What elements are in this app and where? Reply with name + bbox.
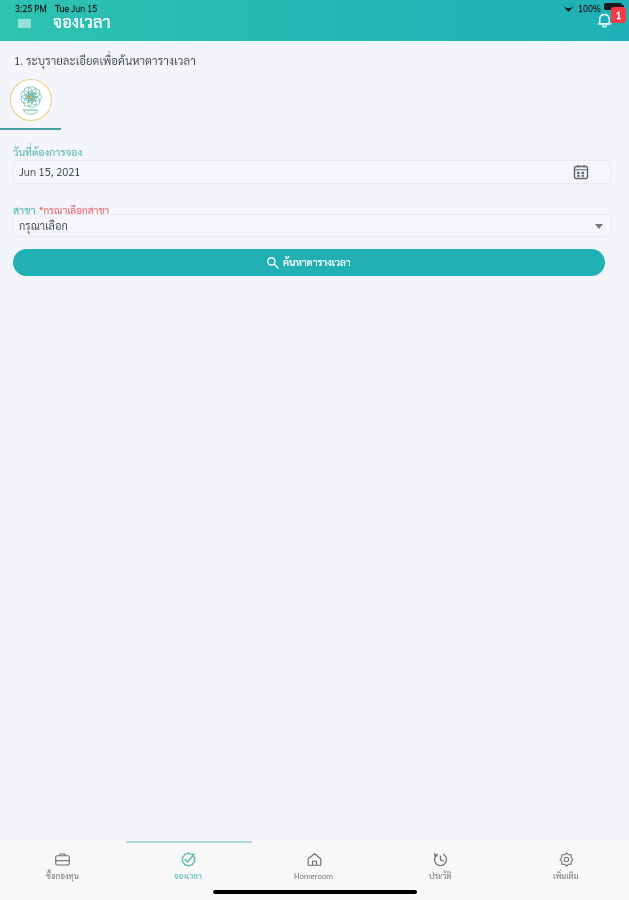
button[interactable]: จองเวลา (125, 840, 251, 880)
staticText: ซื้อกองทุน (46, 870, 79, 880)
button[interactable]: Menu (17, 17, 32, 30)
button[interactable]: Homeroom (251, 840, 377, 880)
button[interactable]: Branch logo (9, 78, 53, 122)
staticText: Tue Jun 15 (55, 2, 98, 14)
staticText: เพิ่มเติม (553, 870, 579, 880)
staticText: วันที่ต้องการจอง (13, 145, 83, 159)
staticText: ค้นหาตารางเวลา (283, 255, 351, 268)
staticText: 3:25 PM (15, 2, 47, 14)
staticText: กรุณาเลือก (19, 218, 68, 232)
staticText: ประวัติ (429, 870, 452, 880)
button[interactable]: Notifications (594, 6, 627, 28)
staticText: 100% (578, 2, 601, 14)
button[interactable]: ประวัติ (377, 840, 503, 880)
button[interactable]: กรุณาเลือก (13, 214, 611, 237)
other: Pick date (574, 165, 588, 179)
button[interactable]: ค้นหาตารางเวลา (13, 249, 605, 276)
button[interactable]: เพิ่มเติม (503, 840, 629, 880)
staticText: Homeroom (294, 870, 334, 880)
button[interactable]: ซื้อกองทุน (0, 840, 125, 880)
staticText: Jun 15, 2021 (19, 164, 81, 178)
staticText: 1 (616, 9, 621, 21)
button[interactable]: Jun 15, 2021 (13, 160, 611, 184)
staticText: 1. ระบุรายละเอียดเพื่อค้นหาตารางเวลา (14, 53, 196, 68)
staticText: จองเวลา (174, 870, 202, 880)
staticText: *กรุณาเลือกสาขา (39, 203, 110, 216)
staticText: จองเวลา (53, 10, 111, 31)
staticText: สาขา (13, 203, 39, 217)
